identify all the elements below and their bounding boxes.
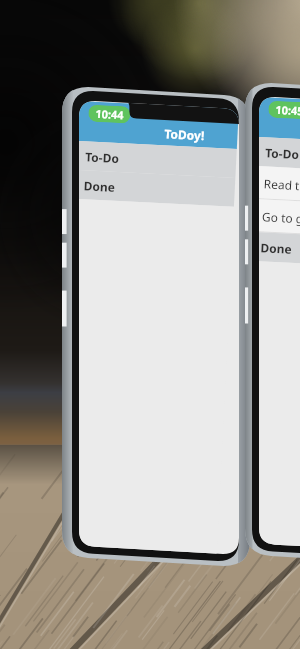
staticText: Done: [83, 177, 116, 195]
staticText: 10:44: [95, 106, 125, 122]
button[interactable]: To-Do: [79, 141, 237, 178]
staticText: Done: [260, 239, 293, 257]
staticText: ToDoy!: [164, 125, 205, 143]
staticText: To-Do: [85, 148, 120, 166]
staticText: To-Do: [265, 144, 300, 162]
button[interactable]: To-Do: [259, 137, 300, 174]
staticText: Go to gym: [262, 208, 300, 227]
button[interactable]: Done: [259, 232, 300, 269]
button[interactable]: Done: [79, 170, 235, 207]
staticText: 10:45: [275, 102, 300, 118]
staticText: Read the book: [263, 175, 300, 195]
button[interactable]: Read the book: [259, 166, 300, 207]
button[interactable]: Go to gym: [259, 199, 300, 240]
